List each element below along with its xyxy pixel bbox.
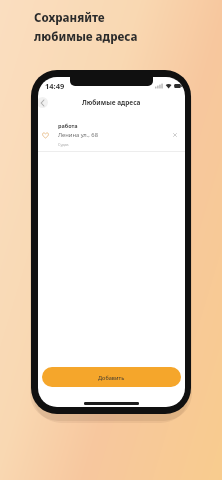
staticText: 14:49 xyxy=(45,81,65,91)
button[interactable]: Ленина ул., 68 xyxy=(38,129,185,147)
button[interactable]: Добавить xyxy=(42,367,181,387)
staticText: Добавить xyxy=(98,374,125,381)
button[interactable] xyxy=(38,97,48,108)
staticText: Судак xyxy=(58,142,69,147)
staticText: Сохраняйте xyxy=(34,10,105,26)
staticText: любимые адреса xyxy=(34,29,138,45)
staticText: работа xyxy=(58,122,78,129)
staticText: Любимые адреса xyxy=(82,98,141,107)
staticText: Ленина ул., 68 xyxy=(58,131,98,139)
button[interactable]: Любимые адреса xyxy=(38,98,185,107)
